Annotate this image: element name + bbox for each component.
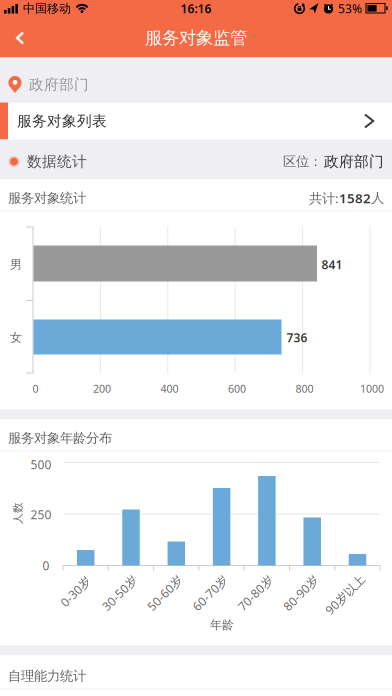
- staticText: 70-80岁: [233, 585, 277, 601]
- staticText: 0-30岁: [57, 583, 94, 599]
- staticText: 250: [30, 506, 51, 522]
- staticText: 女: [10, 330, 22, 345]
- staticText: 50-60岁: [143, 585, 187, 601]
- staticText: 500: [30, 456, 51, 472]
- staticText: 90岁以上: [320, 586, 370, 602]
- staticText: 政府部门: [324, 152, 384, 170]
- staticText: 53%: [338, 0, 362, 16]
- staticText: 16:16: [180, 0, 211, 16]
- staticText: 服务对象统计: [8, 190, 86, 206]
- staticText: 自理能力统计: [8, 668, 86, 684]
- staticText: 区位：: [283, 153, 322, 170]
- staticText: 1582: [339, 189, 371, 207]
- staticText: 男: [10, 257, 22, 272]
- button[interactable]: 选择区位: [283, 152, 392, 170]
- staticText: 人: [371, 190, 384, 206]
- staticText: 1000: [360, 381, 384, 396]
- staticText: 服务对象监管: [145, 27, 247, 49]
- staticText: 数据统计: [27, 152, 87, 170]
- button[interactable]: 服务对象列表: [0, 102, 392, 139]
- staticText: 人数: [7, 506, 29, 519]
- button[interactable]: Back: [0, 18, 36, 57]
- staticText: 中国移动: [23, 1, 71, 16]
- staticText: 736: [286, 329, 307, 345]
- staticText: 400: [160, 381, 178, 396]
- staticText: 30-50岁: [97, 585, 141, 601]
- staticText: 政府部门: [29, 75, 89, 93]
- staticText: 80-90岁: [279, 585, 323, 601]
- staticText: 共计:: [309, 189, 339, 207]
- staticText: 200: [93, 381, 111, 396]
- staticText: 年龄: [210, 618, 234, 632]
- staticText: 600: [228, 381, 246, 396]
- staticText: 0: [42, 557, 49, 573]
- staticText: 0: [32, 381, 38, 396]
- staticText: 800: [295, 381, 313, 396]
- staticText: 服务对象年龄分布: [8, 430, 112, 446]
- staticText: 841: [321, 256, 342, 272]
- staticText: 服务对象列表: [17, 112, 107, 130]
- staticText: 60-70岁: [188, 585, 232, 601]
